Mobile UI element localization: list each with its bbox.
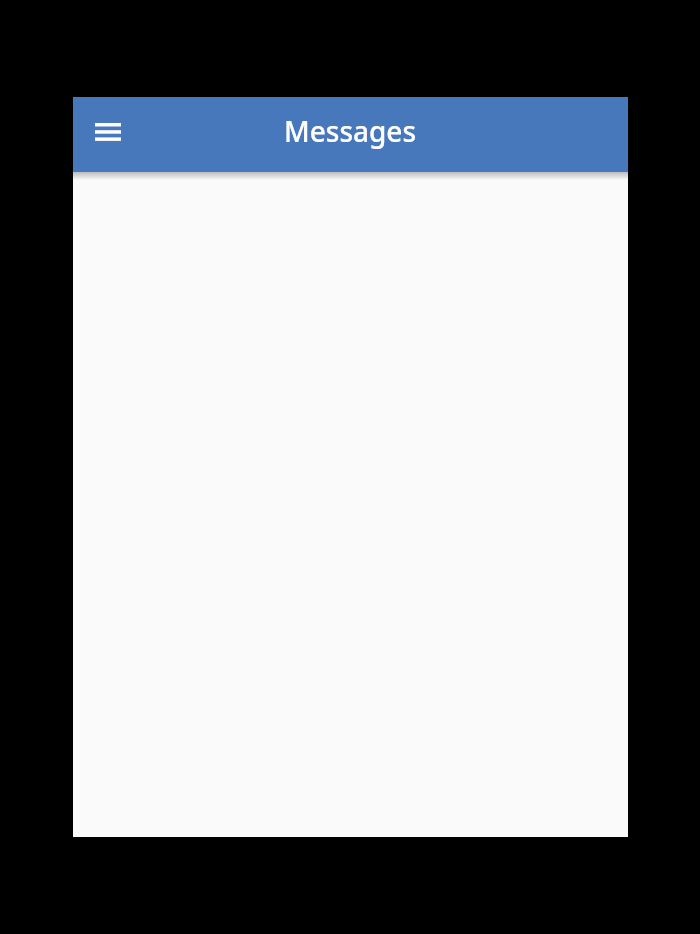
button[interactable] bbox=[84, 108, 132, 156]
staticText: Messages bbox=[284, 112, 417, 150]
